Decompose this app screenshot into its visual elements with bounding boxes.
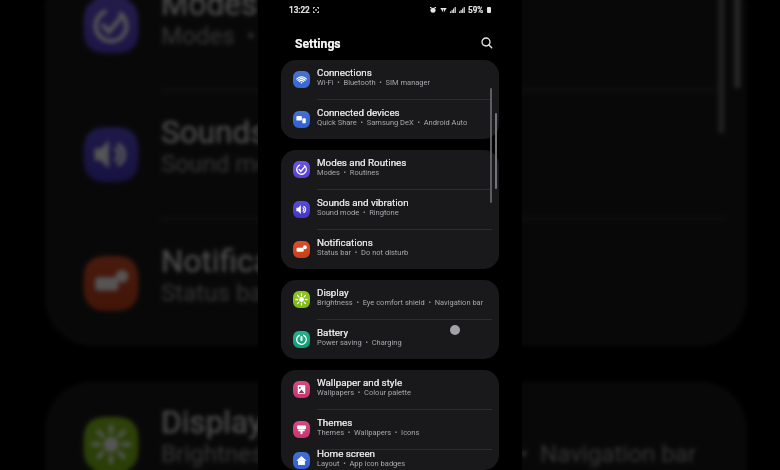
button[interactable]: Display (281, 280, 499, 319)
staticText: Layout • App icon badges (317, 459, 406, 468)
button[interactable]: Sounds and vibration (281, 190, 499, 229)
button[interactable]: Wallpaper and style (281, 370, 499, 409)
staticText: Connected devices (317, 107, 400, 118)
button[interactable]: Connected devices (281, 100, 499, 139)
staticText: Notifications (161, 243, 341, 278)
staticText: Themes (317, 417, 353, 428)
staticText: 59% (468, 5, 484, 15)
staticText: Quick Share • Samsung DeX • Android Auto (317, 118, 468, 127)
staticText: Wallpaper and style (317, 377, 403, 388)
staticText: Sounds and vibration (317, 197, 409, 208)
staticText: Status bar • Do not disturb (161, 279, 457, 308)
staticText: Status bar • Do not disturb (317, 248, 409, 257)
button[interactable]: Notifications (281, 230, 499, 269)
staticText: Modes and Routines (161, 0, 451, 21)
button[interactable]: Battery (281, 320, 499, 359)
button[interactable]: Notifications (45, 221, 747, 346)
button[interactable]: Modes and Routines (281, 150, 499, 189)
button[interactable]: Modes and Routines (45, 0, 747, 89)
staticText: Connections (317, 67, 372, 78)
staticText: 13:22 (289, 5, 310, 15)
staticText: Wi-Fi • Bluetooth • SIM manager (317, 78, 431, 87)
staticText: Battery (317, 327, 349, 338)
staticText: Modes and Routines (317, 157, 407, 168)
button[interactable]: Themes (281, 410, 499, 449)
staticText: Power saving • Charging (317, 338, 402, 347)
staticText: Brightness • Eye comfort shield • Naviga… (317, 298, 484, 307)
staticText: Home screen (317, 448, 376, 459)
staticText: Notifications (317, 237, 373, 248)
button[interactable]: Home screen (281, 441, 499, 470)
staticText: Wallpapers • Colour palette (317, 388, 411, 397)
staticText: Settings (295, 37, 341, 51)
staticText: Sound mode • Ringtone (317, 208, 399, 217)
button[interactable]: Sounds and vibration (45, 92, 747, 217)
staticText: Sound mode • Ringtone (161, 150, 425, 179)
staticText: Themes • Wallpapers • Icons (317, 428, 420, 437)
button[interactable]: Search (478, 34, 496, 52)
staticText: Modes • Routines (161, 21, 364, 50)
staticText: Modes • Routines (317, 168, 380, 177)
button[interactable]: Connections (281, 60, 499, 99)
staticText: Brightness • Eye comfort shield • Naviga… (161, 440, 699, 469)
staticText: Display (161, 404, 264, 439)
staticText: Display (317, 287, 349, 298)
staticText: Sounds and vibration (161, 114, 457, 150)
button[interactable]: Display (45, 382, 747, 470)
